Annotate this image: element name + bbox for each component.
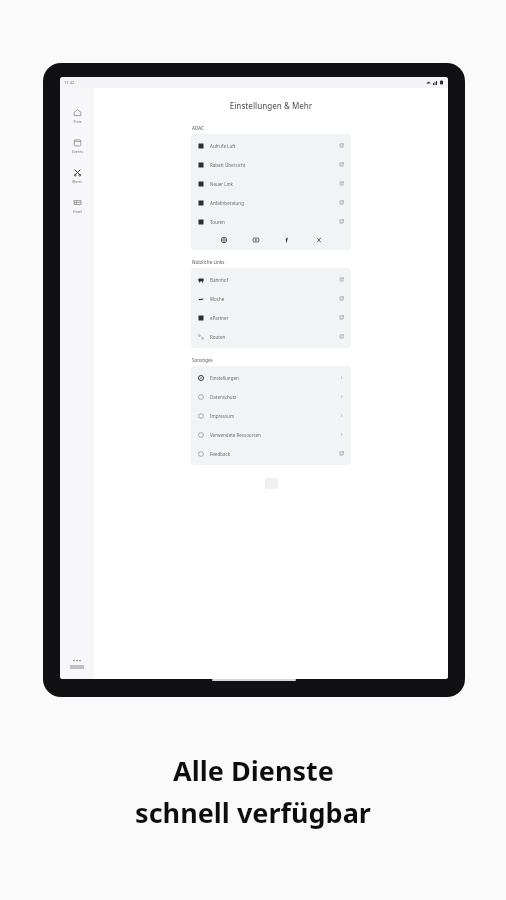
staticText: Datenschutz [210, 394, 237, 400]
staticText: Touren [210, 219, 225, 225]
staticText: Menü [72, 179, 82, 184]
staticText: Impressum [210, 413, 235, 419]
staticText: schnell verfügbar [135, 794, 371, 831]
button[interactable]: x [313, 234, 324, 245]
staticText: Rabatt Übersicht [210, 162, 246, 168]
button[interactable]: Woche [191, 289, 351, 308]
staticText: Routen [210, 334, 226, 340]
button[interactable]: insta [218, 234, 229, 245]
staticText: 11:42 [64, 80, 75, 85]
staticText: Bahnhof [210, 277, 229, 283]
button[interactable]: Events [60, 134, 94, 158]
staticText: Hotel [73, 209, 82, 214]
button[interactable]: Einstellungen [191, 368, 351, 387]
button[interactable]: Impressum [191, 406, 351, 425]
button[interactable]: Bahnhof [191, 270, 351, 289]
button[interactable]: Menü [60, 164, 94, 188]
button[interactable]: yt [250, 234, 261, 245]
button[interactable]: Feedback [191, 444, 351, 463]
staticText: Anfahrberatung [210, 200, 244, 206]
staticText: Einstellungen [210, 375, 239, 381]
staticText: Alle Dienste [173, 752, 334, 789]
button[interactable]: Rabatt Übersicht [191, 155, 351, 174]
staticText: Einstellungen & Mehr [94, 100, 448, 111]
staticText: Events [72, 149, 83, 154]
staticText: Preis [73, 119, 82, 124]
button[interactable]: Anfahrberatung [191, 193, 351, 212]
button[interactable]: fb [281, 234, 292, 245]
staticText: Neuer Link [210, 181, 234, 187]
staticText: Feedback [210, 451, 231, 457]
button[interactable]: Preis [60, 104, 94, 128]
button[interactable]: Neuer Link [191, 174, 351, 193]
button[interactable] [60, 658, 94, 679]
button[interactable]: ePartner [191, 308, 351, 327]
staticText: Sonstiges [192, 357, 213, 363]
button[interactable]: Touren [191, 212, 351, 231]
button[interactable]: Hotel [60, 194, 94, 218]
staticText: Woche [210, 296, 225, 302]
button[interactable]: Datenschutz [191, 387, 351, 406]
button[interactable]: Aufrufe Luft [191, 136, 351, 155]
staticText: ADAC [192, 125, 204, 131]
staticText: Aufrufe Luft [210, 143, 236, 149]
staticText: ePartner [210, 315, 229, 321]
button[interactable]: Routen [191, 327, 351, 346]
button[interactable]: Verwendete Ressourcen [191, 425, 351, 444]
staticText: Nützliche Links [192, 259, 225, 265]
staticText: Verwendete Ressourcen [210, 432, 261, 438]
